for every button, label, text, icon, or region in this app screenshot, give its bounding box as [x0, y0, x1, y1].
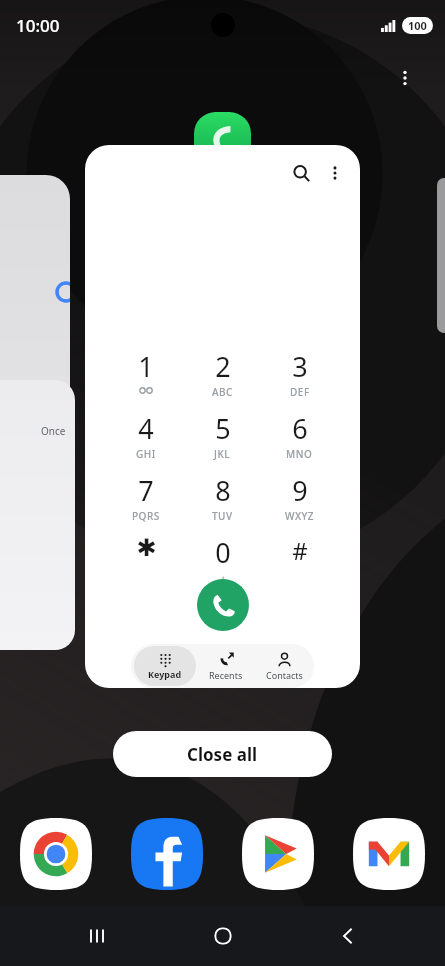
staticText: MNO: [286, 447, 313, 461]
staticText: 9: [292, 472, 308, 509]
staticText: TUV: [212, 509, 233, 523]
staticText: 5: [215, 410, 231, 447]
button[interactable]: 2: [184, 348, 261, 400]
button[interactable]: 0: [184, 534, 261, 586]
button[interactable]: Keypad: [134, 646, 196, 686]
button[interactable]: ✱: [108, 534, 184, 586]
staticText: 1: [138, 348, 154, 385]
button[interactable]: Recents: [196, 644, 255, 688]
staticText: 8: [215, 472, 231, 509]
staticText: Keypad: [148, 668, 182, 680]
staticText: 100: [408, 18, 427, 33]
staticText: #: [292, 534, 308, 567]
button[interactable]: More options: [385, 58, 425, 98]
staticText: 0: [215, 534, 231, 571]
staticText: 7: [138, 472, 154, 509]
staticText: WXYZ: [285, 509, 315, 523]
button[interactable]: 4: [108, 410, 184, 462]
staticText: 4: [138, 410, 154, 447]
staticText: ABC: [212, 385, 233, 399]
staticText: +: [220, 571, 227, 586]
button[interactable]: Play Store: [240, 816, 316, 892]
button[interactable]: Phone app: [194, 112, 251, 169]
button[interactable]: 5: [184, 410, 261, 462]
staticText: Contacts: [266, 669, 303, 681]
staticText: GHI: [136, 447, 156, 461]
staticText: Close all: [187, 743, 258, 766]
button[interactable]: 1: [108, 348, 184, 400]
button[interactable]: Recent apps: [69, 908, 125, 964]
button[interactable]: Home: [195, 908, 251, 964]
button[interactable]: 8: [184, 472, 261, 524]
button[interactable]: 9: [261, 472, 338, 524]
button[interactable]: Close all: [113, 731, 332, 777]
staticText: Recents: [209, 669, 243, 681]
button[interactable]: [0, 175, 70, 650]
button[interactable]: Search: [284, 156, 318, 190]
staticText: 3: [292, 348, 308, 385]
button[interactable]: Contacts: [255, 644, 314, 688]
button[interactable]: Gmail: [351, 816, 427, 892]
button[interactable]: Once: [0, 380, 75, 650]
button[interactable]: Call: [197, 579, 249, 631]
button[interactable]: Chrome: [18, 816, 94, 892]
button[interactable]: [437, 178, 445, 333]
staticText: JKL: [214, 447, 231, 461]
button[interactable]: Facebook: [129, 816, 205, 892]
staticText: Once: [41, 424, 66, 438]
button[interactable]: More options: [318, 156, 352, 190]
button[interactable]: Back: [320, 908, 376, 964]
button[interactable]: Search: [85, 145, 360, 688]
staticText: ✱: [136, 534, 157, 562]
button[interactable]: 6: [261, 410, 338, 462]
staticText: PQRS: [132, 509, 160, 523]
button[interactable]: 7: [108, 472, 184, 524]
staticText: 6: [292, 410, 308, 447]
staticText: 10:00: [16, 14, 60, 37]
staticText: 2: [215, 348, 231, 385]
staticText: DEF: [290, 385, 310, 399]
button[interactable]: 3: [261, 348, 338, 400]
button[interactable]: #: [261, 534, 338, 586]
